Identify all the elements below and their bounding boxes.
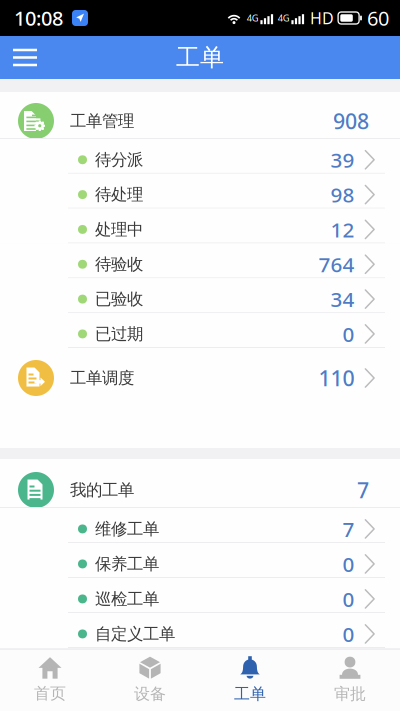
- staticText: 110: [318, 363, 354, 393]
- staticText: 908: [333, 106, 369, 136]
- staticText: 工单管理: [70, 111, 134, 131]
- button[interactable]: 待验收: [0, 243, 400, 278]
- staticText: 0: [342, 550, 354, 578]
- staticText: 已过期: [95, 324, 143, 344]
- staticText: 98: [330, 180, 354, 209]
- button[interactable]: 设备: [100, 649, 200, 711]
- staticText: 7: [357, 475, 369, 505]
- button[interactable]: 审批: [300, 649, 400, 711]
- button[interactable]: 工单管理: [0, 92, 400, 139]
- staticText: 7: [342, 515, 354, 543]
- staticText: 设备: [134, 684, 166, 704]
- button[interactable]: 自定义工单: [0, 613, 400, 648]
- staticText: 首页: [34, 684, 66, 703]
- staticText: 4G: [278, 12, 290, 24]
- button[interactable]: 我的工单: [0, 459, 400, 508]
- staticText: 工单调度: [70, 368, 134, 388]
- staticText: 4G: [247, 12, 259, 24]
- button[interactable]: 工单: [200, 649, 300, 711]
- button[interactable]: 已过期: [0, 313, 400, 348]
- staticText: 34: [330, 285, 354, 313]
- button[interactable]: Menu: [0, 36, 50, 79]
- staticText: 保养工单: [95, 554, 159, 574]
- button[interactable]: 保养工单: [0, 543, 400, 578]
- staticText: 0: [342, 620, 354, 648]
- button[interactable]: 处理中: [0, 209, 400, 243]
- staticText: 自定义工单: [95, 624, 175, 644]
- button[interactable]: 待分派: [0, 139, 400, 174]
- staticText: 已验收: [95, 289, 143, 309]
- staticText: 处理中: [95, 219, 143, 240]
- staticText: 巡检工单: [95, 589, 159, 609]
- button[interactable]: 巡检工单: [0, 578, 400, 613]
- button[interactable]: 已验收: [0, 278, 400, 313]
- button[interactable]: 待处理: [0, 174, 400, 209]
- staticText: 工单: [234, 684, 266, 704]
- staticText: 0: [342, 320, 354, 348]
- button[interactable]: 首页: [0, 649, 100, 711]
- staticText: 待分派: [95, 149, 143, 170]
- staticText: 10:08: [14, 5, 63, 31]
- staticText: 维修工单: [95, 519, 159, 539]
- staticText: 待处理: [95, 184, 143, 205]
- staticText: 39: [330, 146, 354, 174]
- staticText: 12: [330, 215, 354, 243]
- staticText: 764: [318, 250, 354, 278]
- staticText: 我的工单: [70, 480, 134, 500]
- staticText: HD: [310, 7, 334, 29]
- button[interactable]: 工单调度: [0, 348, 400, 396]
- staticText: 审批: [334, 684, 366, 704]
- staticText: 60: [367, 5, 389, 31]
- staticText: 工单: [176, 43, 224, 72]
- staticText: 0: [342, 585, 354, 613]
- staticText: 待验收: [95, 254, 143, 275]
- button[interactable]: 维修工单: [0, 508, 400, 543]
